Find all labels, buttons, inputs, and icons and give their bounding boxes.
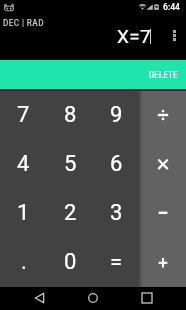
button[interactable]: Multiply [139,140,186,189]
staticText: X=7 [117,25,151,47]
button[interactable]: Divide [139,91,186,140]
staticText: 1 [17,200,30,226]
button[interactable]: 3 [93,189,139,238]
staticText: . [21,249,27,275]
button[interactable]: 0 [47,238,93,287]
staticText: 9 [110,102,123,128]
staticText: 2 [64,200,77,226]
staticText: 3 [110,200,123,226]
button[interactable]: 6 [93,140,139,189]
button[interactable]: . [0,238,47,287]
button[interactable]: 2 [47,189,93,238]
button[interactable]: Subtract [139,189,186,238]
button[interactable]: 1 [0,189,47,238]
staticText: 4 [17,151,30,177]
button[interactable]: = [93,238,139,287]
button[interactable]: Back [24,287,54,310]
button[interactable]: 4 [0,140,47,189]
staticText: 6:44 [163,2,180,12]
button[interactable]: 8 [47,91,93,140]
staticText: 0 [64,249,77,275]
staticText: DEC | RAD [3,18,44,28]
button[interactable]: 5 [47,140,93,189]
staticText: 5 [64,151,77,177]
button[interactable]: More options [173,30,176,41]
button[interactable]: Recent apps [132,287,162,310]
staticText: = [110,249,123,275]
staticText: 7 [17,102,30,128]
button[interactable]: 7 [0,91,47,140]
button[interactable]: Add [139,238,186,287]
button[interactable]: 9 [93,91,139,140]
staticText: 8 [64,102,77,128]
staticText: 6 [110,151,123,177]
staticText: DELETE [149,70,178,80]
button[interactable]: DELETE [0,60,186,91]
button[interactable]: Home [78,287,108,310]
